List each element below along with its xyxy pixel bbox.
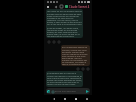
button[interactable]: More xyxy=(56,39,61,44)
button[interactable]: Les ruines du fort ont disparu dans les … xyxy=(46,9,83,38)
staticText: Les ruines du fort ont disparu dans les … xyxy=(47,10,82,37)
button[interactable]: Copy xyxy=(46,39,51,44)
button[interactable]: Recents xyxy=(73,96,78,101)
button[interactable]: More xyxy=(85,66,90,71)
staticText: Je comprends que tu cherches a trouver u… xyxy=(47,72,82,86)
button[interactable]: Et si la migration pouvait se lire ainsi… xyxy=(61,45,90,66)
button[interactable]: Copy xyxy=(75,66,80,71)
button[interactable]: Je comprends que tu cherches a trouver u… xyxy=(46,71,83,87)
button[interactable]: Add xyxy=(47,90,50,93)
button[interactable]: Tools xyxy=(51,90,54,93)
button[interactable]: Home xyxy=(62,96,67,101)
button[interactable]: Retry xyxy=(80,66,85,71)
staticText: Claude Sonnet 4 xyxy=(69,5,90,9)
button[interactable]: Back xyxy=(51,96,56,101)
button[interactable]: Close xyxy=(45,4,50,9)
button[interactable]: Keyboard xyxy=(84,96,89,101)
button[interactable]: Retry xyxy=(51,39,56,44)
staticText: Ecrire une question xyxy=(55,90,86,93)
button[interactable]: Send xyxy=(86,90,89,93)
button[interactable]: Share xyxy=(53,4,58,9)
button[interactable]: History xyxy=(59,4,64,9)
staticText: Et si la migration pouvait se lire ainsi… xyxy=(62,46,89,65)
